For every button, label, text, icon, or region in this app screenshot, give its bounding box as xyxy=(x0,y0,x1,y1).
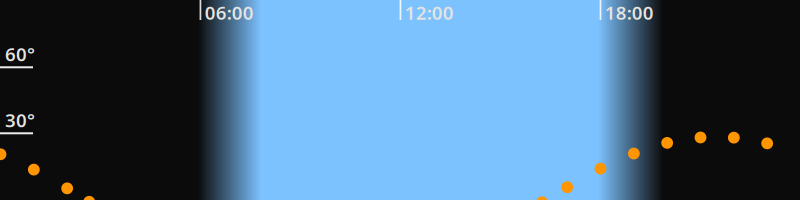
staticText: 18:00 xyxy=(605,0,654,25)
staticText: 12:00 xyxy=(405,0,454,25)
staticText: 30° xyxy=(5,107,35,132)
staticText: 06:00 xyxy=(205,0,254,25)
staticText: 60° xyxy=(5,41,35,66)
button[interactable]: Altitude chart xyxy=(0,0,800,200)
